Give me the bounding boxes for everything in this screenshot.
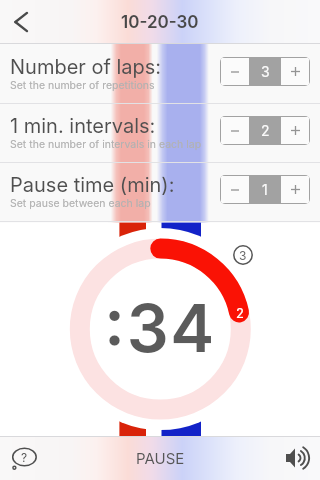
staticText: Number of laps: — [10, 55, 162, 79]
staticText: Set the number of intervals in each lap — [10, 138, 202, 151]
button[interactable]: Sound — [276, 436, 320, 480]
staticText: 10-20-30 — [121, 12, 199, 33]
button[interactable]: Decrease — [221, 117, 249, 144]
staticText: 3 — [239, 248, 247, 263]
button[interactable]: Number of laps: — [0, 44, 320, 104]
staticText: 1 min. intervals: — [10, 114, 156, 138]
button[interactable]: Increase — [281, 117, 309, 144]
button[interactable]: Decrease — [221, 58, 249, 85]
button[interactable]: PAUSE — [110, 438, 211, 478]
staticText: :34 — [104, 288, 216, 368]
button[interactable]: Increase — [281, 58, 309, 85]
button[interactable]: Pause time (min): — [0, 163, 320, 222]
staticText: 1 — [262, 181, 268, 198]
staticText: Set the number of repetitions — [10, 79, 155, 92]
staticText: ? — [21, 450, 28, 465]
button[interactable]: 1 min. intervals: — [0, 104, 320, 163]
staticText: Pause time (min): — [10, 173, 175, 197]
button[interactable]: Decrease — [221, 176, 249, 203]
staticText: 2 — [261, 122, 270, 139]
button[interactable]: Increase — [281, 176, 309, 203]
staticText: Set pause between each lap — [10, 197, 151, 210]
staticText: PAUSE — [136, 449, 185, 467]
button[interactable]: Back — [0, 0, 44, 44]
staticText: 2 — [236, 305, 244, 321]
staticText: 3 — [261, 63, 270, 80]
button[interactable]: Help — [2, 436, 46, 480]
